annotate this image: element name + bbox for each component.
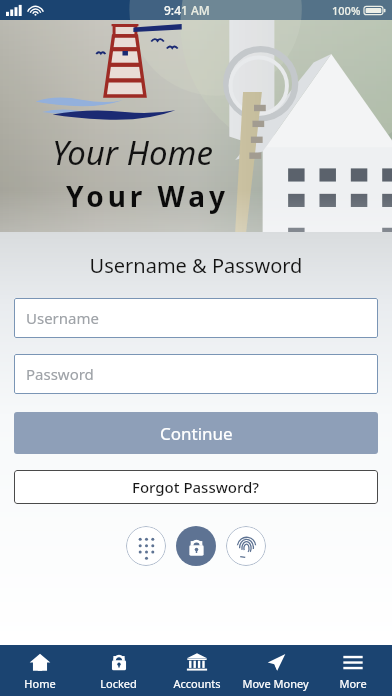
staticText: Your Home [52,130,213,175]
staticText: Username & Password [0,252,392,279]
button[interactable]: Password login [176,526,216,566]
button[interactable]: Home [0,645,79,696]
button[interactable]: PIN keypad login [126,526,166,566]
button[interactable]: Username [14,298,378,338]
staticText: Home [24,676,56,691]
staticText: 100% [332,3,361,18]
button[interactable]: More [314,645,392,696]
staticText: Accounts [173,676,221,691]
button[interactable]: Continue [14,412,378,454]
staticText: Continue [160,422,233,445]
staticText: Password [26,364,94,384]
button[interactable]: Accounts [158,645,236,696]
button[interactable]: Password [14,354,378,394]
button[interactable]: Locked [79,645,158,696]
button[interactable]: Fingerprint login [226,526,266,566]
staticText: More [339,676,367,691]
staticText: Username [26,308,99,328]
staticText: Forgot Password? [132,477,260,497]
staticText: Your Way [66,177,229,215]
staticText: 9:41 AM [164,2,210,18]
button[interactable]: Move Money [236,645,314,696]
staticText: Move Money [242,676,309,691]
button[interactable]: Forgot Password? [14,470,378,504]
staticText: Locked [100,676,137,691]
